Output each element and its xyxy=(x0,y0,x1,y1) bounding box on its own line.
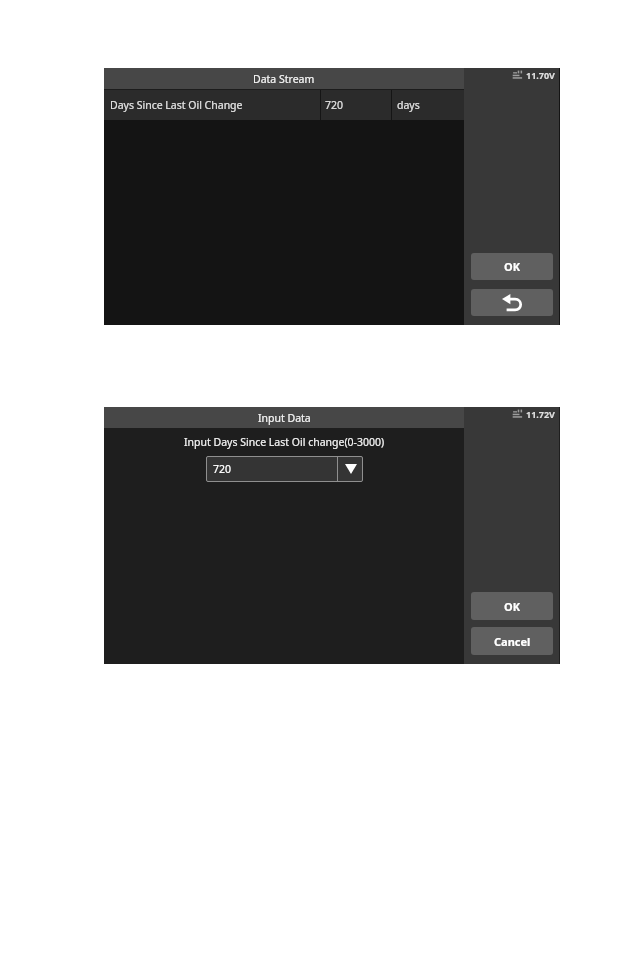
staticText: 720 xyxy=(325,98,344,112)
button[interactable]: Cancel xyxy=(471,627,553,655)
staticText: Days Since Last Oil Change xyxy=(110,98,243,112)
staticText: OK xyxy=(504,599,521,614)
button[interactable]: Days Since Last Oil Change xyxy=(104,90,464,120)
button[interactable]: OK xyxy=(471,592,553,620)
button[interactable]: Back xyxy=(471,289,553,316)
staticText: OK xyxy=(504,259,521,274)
staticText: 720 xyxy=(213,462,232,476)
staticText: Input Data xyxy=(258,411,311,425)
staticText: Data Stream xyxy=(253,72,315,86)
button[interactable]: Expand xyxy=(338,456,363,482)
staticText: Input Days Since Last Oil change(0-3000) xyxy=(184,435,385,449)
staticText: Cancel xyxy=(494,634,531,649)
button[interactable]: 720 xyxy=(206,456,363,482)
staticText: days xyxy=(397,98,420,112)
button[interactable]: OK xyxy=(471,253,553,280)
staticText: 11.70V xyxy=(526,69,555,81)
staticText: 11.72V xyxy=(526,408,555,420)
